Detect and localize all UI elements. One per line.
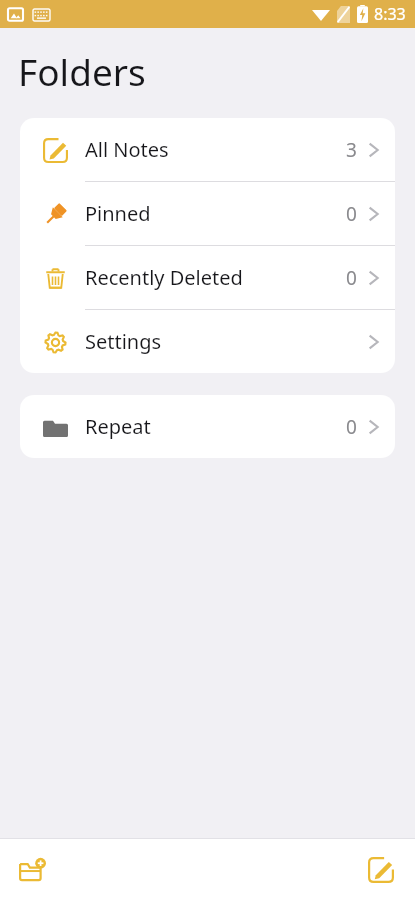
staticText: Settings (85, 328, 162, 355)
staticText: Pinned (85, 200, 151, 227)
staticText: 0 (346, 265, 357, 291)
staticText: 0 (346, 201, 357, 227)
button[interactable]: Pinned (20, 182, 395, 245)
staticText: Repeat (85, 413, 151, 440)
button[interactable]: New note (357, 846, 405, 894)
button[interactable]: New folder (8, 846, 56, 894)
button[interactable]: Recently Deleted (20, 246, 395, 309)
staticText: All Notes (85, 136, 169, 163)
staticText: 8:33 (374, 3, 406, 25)
button[interactable]: All Notes (20, 118, 395, 181)
staticText: 3 (346, 137, 357, 163)
staticText: Recently Deleted (85, 264, 243, 291)
button[interactable]: Repeat (20, 395, 395, 458)
staticText: 0 (346, 414, 357, 440)
button[interactable]: Settings (20, 310, 395, 373)
staticText: Folders (18, 46, 146, 96)
